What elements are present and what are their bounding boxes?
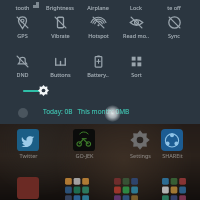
- button[interactable]: Battery..: [79, 52, 117, 82]
- button[interactable]: Wikipedia: [12, 177, 44, 200]
- staticText: Sort: [131, 71, 142, 78]
- button[interactable]: Today: 0B This month: 0MB: [43, 107, 130, 119]
- button[interactable]: Folder: [64, 177, 90, 200]
- staticText: GPS: [17, 32, 28, 39]
- button[interactable]: Twitter: [12, 129, 44, 159]
- staticText: Twitter: [19, 152, 38, 159]
- button[interactable]: Help: [18, 108, 28, 118]
- staticText: te off: [167, 4, 181, 11]
- button[interactable]: Brightness: [38, 85, 49, 96]
- staticText: Lock: [130, 4, 142, 11]
- staticText: tooth: [15, 4, 30, 11]
- staticText: Sync: [168, 32, 180, 39]
- staticText: Brightness: [46, 4, 74, 11]
- staticText: Hotspot: [88, 32, 109, 39]
- button[interactable]: Read mo..: [117, 13, 155, 43]
- button[interactable]: Folder: [161, 177, 187, 200]
- staticText: SHAREit: [162, 152, 183, 159]
- staticText: Airplane: [87, 4, 109, 11]
- button[interactable]: GO-JEK: [68, 129, 100, 159]
- button[interactable]: Brightness slider: [18, 84, 52, 98]
- button[interactable]: Sync: [155, 13, 193, 43]
- staticText: Buttons: [50, 71, 71, 78]
- button[interactable]: Folder: [113, 177, 139, 200]
- staticText: Today: 0B This month: 0MB: [43, 107, 130, 116]
- button[interactable]: DND: [3, 52, 41, 82]
- button[interactable]: Buttons: [41, 52, 79, 82]
- button[interactable]: GPS: [3, 13, 41, 43]
- staticText: Battery..: [87, 71, 109, 78]
- staticText: Read mo..: [123, 32, 149, 39]
- button[interactable]: Settings: [124, 129, 156, 159]
- staticText: GO-JEK: [75, 152, 94, 159]
- button[interactable]: Hotspot: [79, 13, 117, 43]
- staticText: Settings: [130, 152, 151, 159]
- staticText: DND: [16, 71, 29, 78]
- button[interactable]: Sort: [117, 52, 155, 82]
- staticText: Vibrate: [51, 32, 70, 39]
- button[interactable]: SHAREit: [156, 129, 188, 159]
- button[interactable]: Vibrate: [41, 13, 79, 43]
